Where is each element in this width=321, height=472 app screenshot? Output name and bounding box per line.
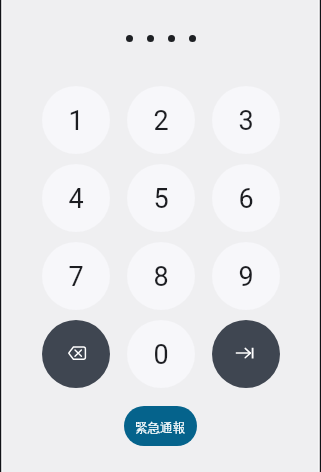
button[interactable]: 1 — [42, 86, 110, 154]
button[interactable]: 3 — [212, 86, 280, 154]
button[interactable]: Backspace — [42, 320, 110, 388]
button[interactable]: 4 — [42, 164, 110, 232]
button[interactable]: 7 — [42, 242, 110, 310]
button[interactable]: 5 — [127, 164, 195, 232]
button[interactable]: 2 — [127, 86, 195, 154]
staticText: 8 — [153, 261, 169, 293]
button[interactable]: 0 — [127, 320, 195, 388]
staticText: 3 — [238, 105, 254, 137]
button[interactable]: 9 — [212, 242, 280, 310]
button[interactable]: 8 — [127, 242, 195, 310]
staticText: 9 — [238, 261, 254, 293]
button[interactable]: 6 — [212, 164, 280, 232]
staticText: 5 — [153, 183, 169, 215]
staticText: 2 — [153, 105, 169, 137]
staticText: 4 — [68, 183, 84, 215]
staticText: 7 — [68, 261, 84, 293]
staticText: 1 — [68, 105, 84, 137]
button[interactable]: Enter — [212, 320, 280, 388]
staticText: 6 — [238, 183, 254, 215]
button[interactable]: 緊急通報 — [124, 406, 197, 446]
staticText: 0 — [153, 339, 169, 371]
staticText: 緊急通報 — [135, 420, 186, 436]
